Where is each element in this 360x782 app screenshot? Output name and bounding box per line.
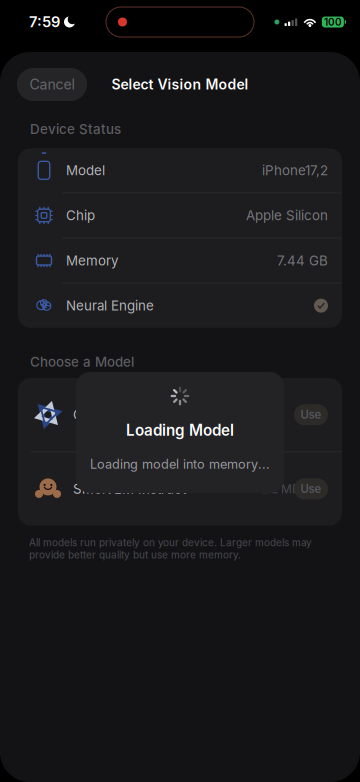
staticText: Model [66, 162, 105, 178]
staticText: All models run privately on your device.… [29, 537, 312, 561]
staticText: Loading Model [126, 421, 234, 439]
staticText: SmolVLM Instruct [73, 481, 186, 497]
button[interactable]: Cancel [17, 68, 87, 101]
staticText: Loading model into memory... [90, 456, 270, 472]
staticText: 7:59 [29, 13, 60, 31]
staticText: Device Status [30, 121, 121, 137]
staticText [294, 407, 306, 422]
button[interactable]: Use [294, 478, 328, 499]
staticText: 100 [324, 16, 342, 28]
staticText: 2.2 MB [261, 482, 300, 496]
staticText: Select Vision Model [111, 76, 248, 93]
staticText: Choose a Model [30, 354, 134, 370]
staticText: Use [300, 482, 321, 496]
staticText: Apple Silicon [246, 207, 328, 223]
staticText: Memory [66, 252, 118, 269]
staticText: 7.44 GB [277, 252, 328, 269]
staticText: iPhone17,2 [262, 162, 328, 178]
staticText: Neural Engine [66, 298, 154, 314]
staticText: Use [300, 408, 321, 422]
staticText: Chip [66, 207, 95, 223]
button[interactable]: Use [294, 404, 328, 425]
staticText: Cancel [29, 76, 74, 93]
staticText: Gemma 3n [73, 407, 142, 423]
